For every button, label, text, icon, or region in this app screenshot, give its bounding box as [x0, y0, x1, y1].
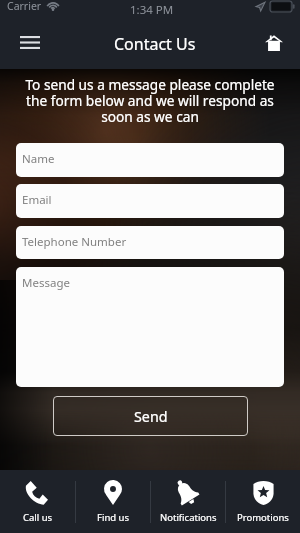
staticText: Send [134, 407, 168, 426]
staticText: Find us [97, 511, 129, 524]
staticText: Telephone Number [22, 234, 127, 250]
staticText: Promotions [237, 511, 289, 524]
staticText: 1:34 PM [130, 2, 174, 18]
button[interactable]: Name [16, 143, 284, 177]
button[interactable]: Promotions [226, 470, 300, 533]
button[interactable]: Email [16, 184, 284, 218]
button[interactable]: Send [53, 396, 248, 436]
button[interactable]: Notifications [151, 470, 225, 533]
staticText: Contact Us [114, 33, 196, 55]
staticText: Notifications [160, 511, 217, 524]
button[interactable]: Message [16, 267, 284, 387]
button[interactable]: Menu [10, 22, 50, 62]
staticText: Call us [23, 511, 53, 524]
button[interactable]: Telephone Number [16, 226, 284, 259]
staticText: Name [22, 151, 55, 167]
staticText: Carrier [7, 0, 42, 13]
button[interactable]: Home [254, 23, 294, 63]
staticText: Message [22, 275, 70, 291]
button[interactable]: Call us [0, 470, 75, 533]
button[interactable]: Find us [76, 470, 150, 533]
staticText: To send us a message please complete the… [22, 75, 278, 126]
staticText: Email [22, 192, 52, 208]
